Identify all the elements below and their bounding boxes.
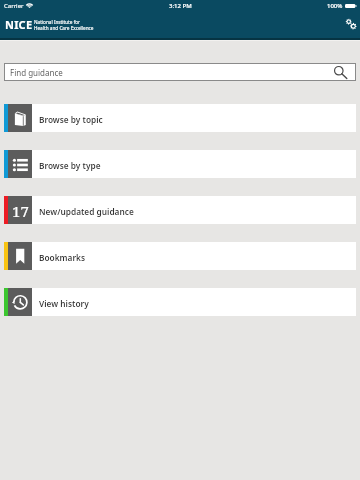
- staticText: National Institute for: [34, 19, 81, 25]
- staticText: Find guidance: [10, 67, 63, 78]
- staticText: Browse by topic: [39, 114, 103, 125]
- button[interactable]: Browse by topic: [4, 104, 356, 132]
- staticText: 3:12 PM: [169, 2, 192, 10]
- staticText: Bookmarks: [39, 252, 85, 263]
- staticText: Browse by type: [39, 160, 101, 171]
- button[interactable]: View history: [4, 288, 356, 316]
- other: Search: [334, 64, 350, 80]
- button[interactable]: Browse by type: [4, 150, 356, 178]
- staticText: 100%: [327, 2, 343, 10]
- button[interactable]: Bookmarks: [4, 242, 356, 270]
- button[interactable]: Settings: [340, 15, 358, 33]
- staticText: New/updated guidance: [39, 206, 134, 217]
- staticText: Carrier: [4, 2, 24, 10]
- staticText: NICE: [5, 17, 33, 32]
- button[interactable]: 17: [4, 196, 356, 224]
- staticText: 17: [12, 201, 29, 221]
- staticText: Health and Care Excellence: [34, 25, 94, 31]
- button[interactable]: Find guidance: [4, 63, 356, 81]
- staticText: View history: [39, 298, 89, 309]
